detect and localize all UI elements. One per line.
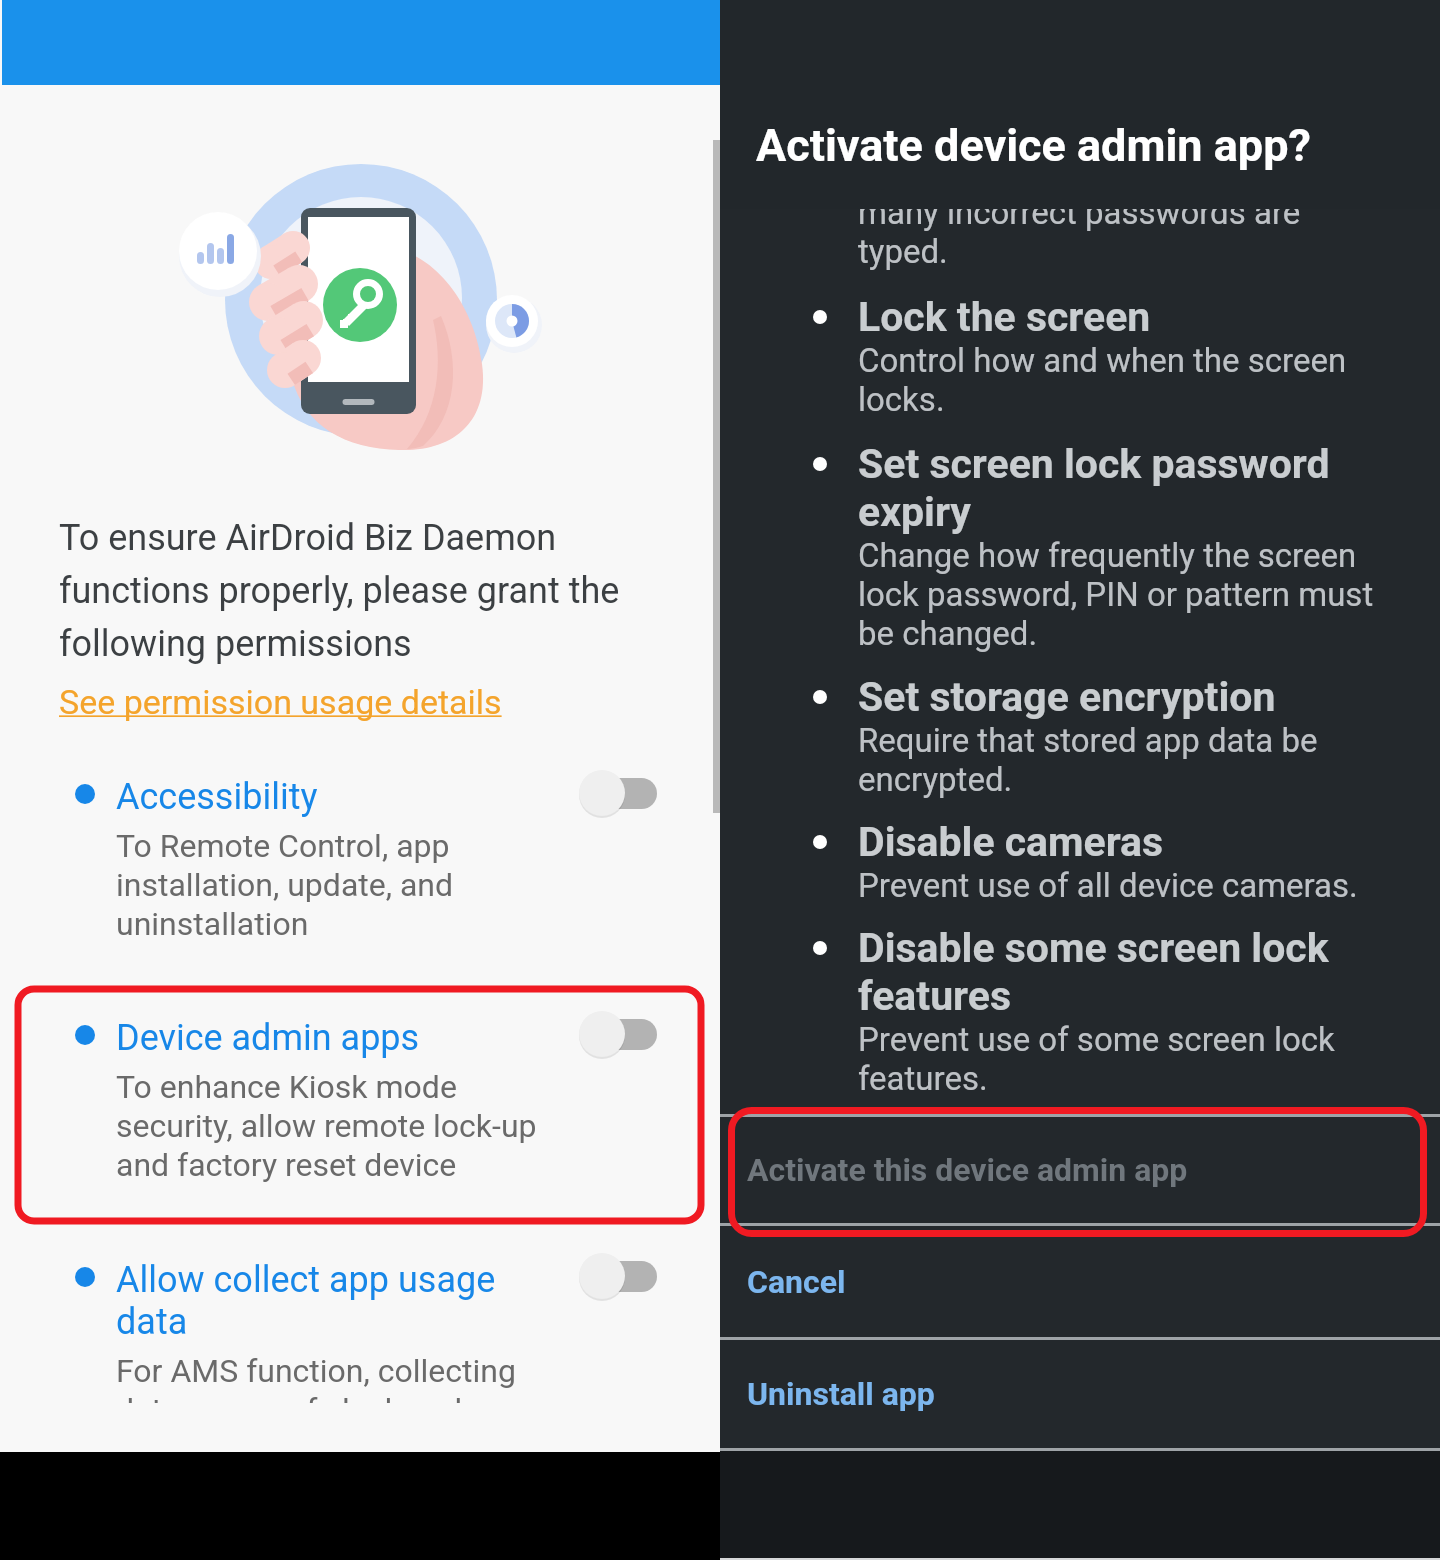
staticText: Uninstall app <box>747 1375 935 1413</box>
staticText: To ensure AirDroid Biz Daemon functions … <box>59 517 699 665</box>
staticText: Require that stored app data be encrypte… <box>858 721 1318 799</box>
button[interactable]: Uninstall app <box>720 1340 1440 1448</box>
button[interactable]: Activate this device admin app <box>720 1117 1440 1223</box>
staticText: Prevent use of all device cameras. <box>858 866 1358 905</box>
staticText: Change how frequently the screen lock pa… <box>858 536 1374 653</box>
button[interactable]: Toggle permission <box>579 1250 669 1302</box>
staticText: To Remote Control, app installation, upd… <box>116 827 454 943</box>
button[interactable]: See permission usage details <box>59 682 502 722</box>
button[interactable]: Toggle permission <box>579 1008 669 1060</box>
staticText: Set screen lock password expiry <box>858 440 1330 536</box>
staticText: Accessibility <box>116 776 318 818</box>
staticText: Activate this device admin app <box>747 1151 1188 1189</box>
staticText: Device admin apps <box>116 1017 420 1059</box>
button[interactable]: Cancel <box>720 1226 1440 1337</box>
button[interactable]: Allow collect app usage data <box>0 1259 560 1403</box>
staticText: Activate device admin app? <box>756 119 1311 172</box>
staticText: Lock the screen <box>858 293 1151 341</box>
staticText: Cancel <box>747 1263 846 1301</box>
button[interactable]: Device admin apps <box>0 1017 560 1232</box>
staticText: For AMS function, collecting data, usage… <box>116 1352 540 1403</box>
staticText: Control how and when the screen locks. <box>858 341 1347 419</box>
staticText: Set storage encryption <box>858 673 1276 721</box>
button[interactable]: Accessibility <box>0 776 560 991</box>
staticText: Disable cameras <box>858 818 1164 866</box>
button[interactable]: Toggle permission <box>579 767 669 819</box>
staticText: Disable some screen lock features <box>858 924 1329 1020</box>
staticText: many incorrect passwords are typed. <box>858 203 1301 271</box>
staticText: See permission usage details <box>59 682 502 722</box>
staticText: To enhance Kiosk mode security, allow re… <box>116 1068 537 1184</box>
staticText: Allow collect app usage data <box>116 1259 496 1343</box>
staticText: Prevent use of some screen lock features… <box>858 1020 1335 1098</box>
